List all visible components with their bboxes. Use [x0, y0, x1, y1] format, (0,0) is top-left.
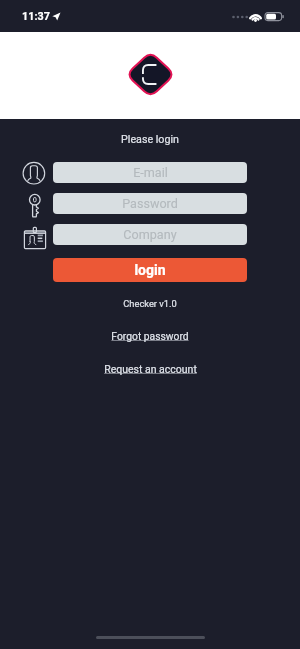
staticText: Company — [123, 227, 177, 242]
button[interactable]: E-mail — [53, 162, 247, 183]
button[interactable]: Password — [53, 193, 247, 214]
staticText: Forgot password — [111, 330, 189, 342]
staticText: Request an account — [104, 363, 197, 375]
staticText: login — [134, 262, 166, 278]
button[interactable]: Forgot password — [0, 328, 300, 344]
staticText: 11:37 — [22, 10, 50, 23]
staticText: Checker v1.0 — [123, 298, 177, 309]
button[interactable]: login — [53, 258, 247, 282]
button[interactable]: Request an account — [0, 361, 300, 377]
staticText: Password — [122, 196, 178, 211]
staticText: E-mail — [133, 165, 168, 180]
button[interactable]: Company — [53, 224, 247, 245]
staticText: Please login — [121, 133, 179, 146]
